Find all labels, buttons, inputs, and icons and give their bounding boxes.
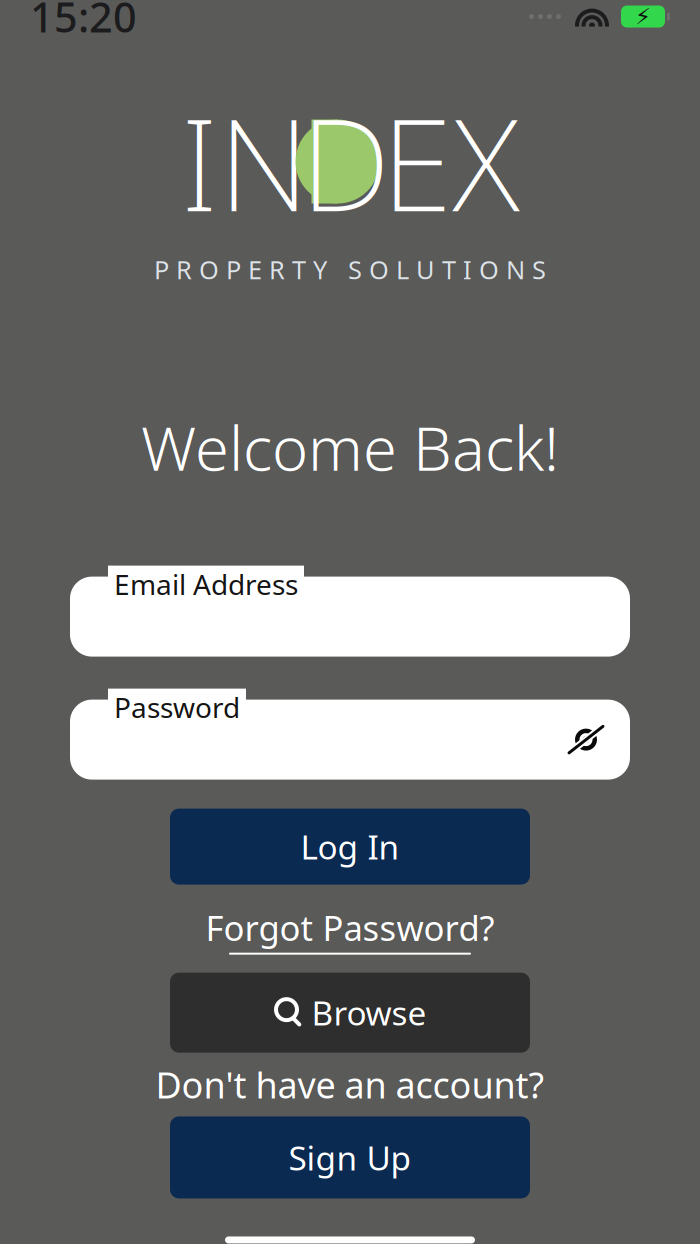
- staticText: Email Address: [114, 566, 298, 603]
- staticText: ⚡︎: [635, 4, 651, 29]
- button[interactable]: Sign Up: [170, 1116, 530, 1198]
- button[interactable]: Show password: [560, 714, 612, 766]
- staticText: Forgot Password?: [205, 905, 494, 951]
- staticText: Log In: [300, 824, 399, 869]
- staticText: 15:20: [30, 0, 137, 44]
- staticText: IN: [180, 76, 309, 246]
- button[interactable]: Forgot Password?: [205, 905, 494, 955]
- staticText: P R O P E R T Y S O L U T I O N S: [154, 252, 546, 286]
- staticText: D: [300, 76, 390, 246]
- staticText: EX: [381, 76, 519, 246]
- staticText: Don't have an account?: [155, 1061, 544, 1108]
- staticText: Sign Up: [288, 1135, 411, 1180]
- button[interactable]: Log In: [170, 809, 530, 885]
- button[interactable]: Browse: [170, 973, 530, 1053]
- staticText: Password: [114, 689, 240, 726]
- staticText: Welcome Back!: [141, 406, 559, 488]
- staticText: Browse: [311, 990, 426, 1035]
